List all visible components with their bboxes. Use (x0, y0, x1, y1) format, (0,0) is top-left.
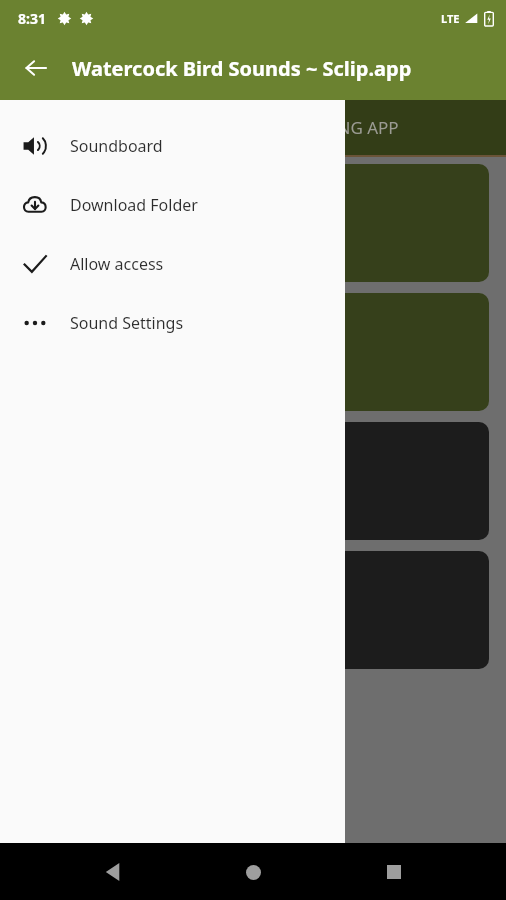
staticText: Watercock Bird Sounds ~ Sclip.app (72, 55, 412, 82)
staticText: LTE (441, 11, 460, 26)
staticText: Soundboard (70, 135, 163, 157)
button[interactable]: SOUND SETTINGS (18, 293, 489, 411)
button[interactable]: Soundboard (0, 116, 345, 175)
staticText: START RINGTONE SETTING APP (150, 116, 399, 139)
staticText: 8:31 (18, 9, 46, 28)
button[interactable]: DOWNLOADED (18, 551, 489, 669)
button[interactable]: SOUNDS (18, 164, 489, 282)
staticText: Sound Settings (70, 312, 184, 334)
button[interactable] (18, 422, 489, 540)
staticText: Allow access (70, 253, 164, 275)
button[interactable]: Home (225, 844, 281, 900)
button[interactable]: Download Folder (0, 175, 345, 234)
staticText: Download Folder (70, 194, 198, 216)
button[interactable]: Back (85, 844, 141, 900)
button[interactable]: Back (14, 46, 58, 90)
button[interactable]: Recent apps (366, 844, 422, 900)
button[interactable]: Sound Settings (0, 293, 345, 352)
button[interactable]: Allow access (0, 234, 345, 293)
